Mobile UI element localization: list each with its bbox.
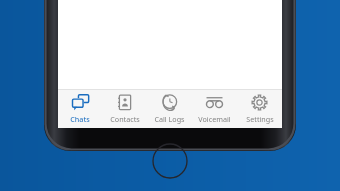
staticText: Call Logs [154, 114, 185, 124]
button[interactable]: Home [152, 143, 188, 179]
staticText: Voicemail [198, 114, 231, 124]
button[interactable]: Chats [58, 90, 102, 128]
button[interactable]: Voicemail [192, 90, 237, 128]
button[interactable]: Call Logs [147, 90, 192, 128]
staticText: Contacts [110, 114, 140, 124]
button[interactable]: Settings [237, 90, 282, 128]
staticText: Settings [246, 114, 274, 124]
staticText: Chats [70, 114, 90, 124]
button[interactable]: Contacts [102, 90, 147, 128]
